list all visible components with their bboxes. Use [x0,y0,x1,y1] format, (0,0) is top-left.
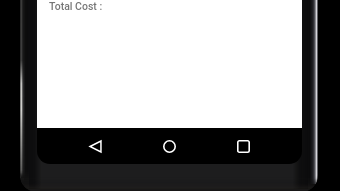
button[interactable]: Recent apps [206,128,280,164]
staticText: Total Cost : [49,0,103,12]
button[interactable]: Home [132,128,206,164]
button[interactable]: Back [59,128,132,164]
